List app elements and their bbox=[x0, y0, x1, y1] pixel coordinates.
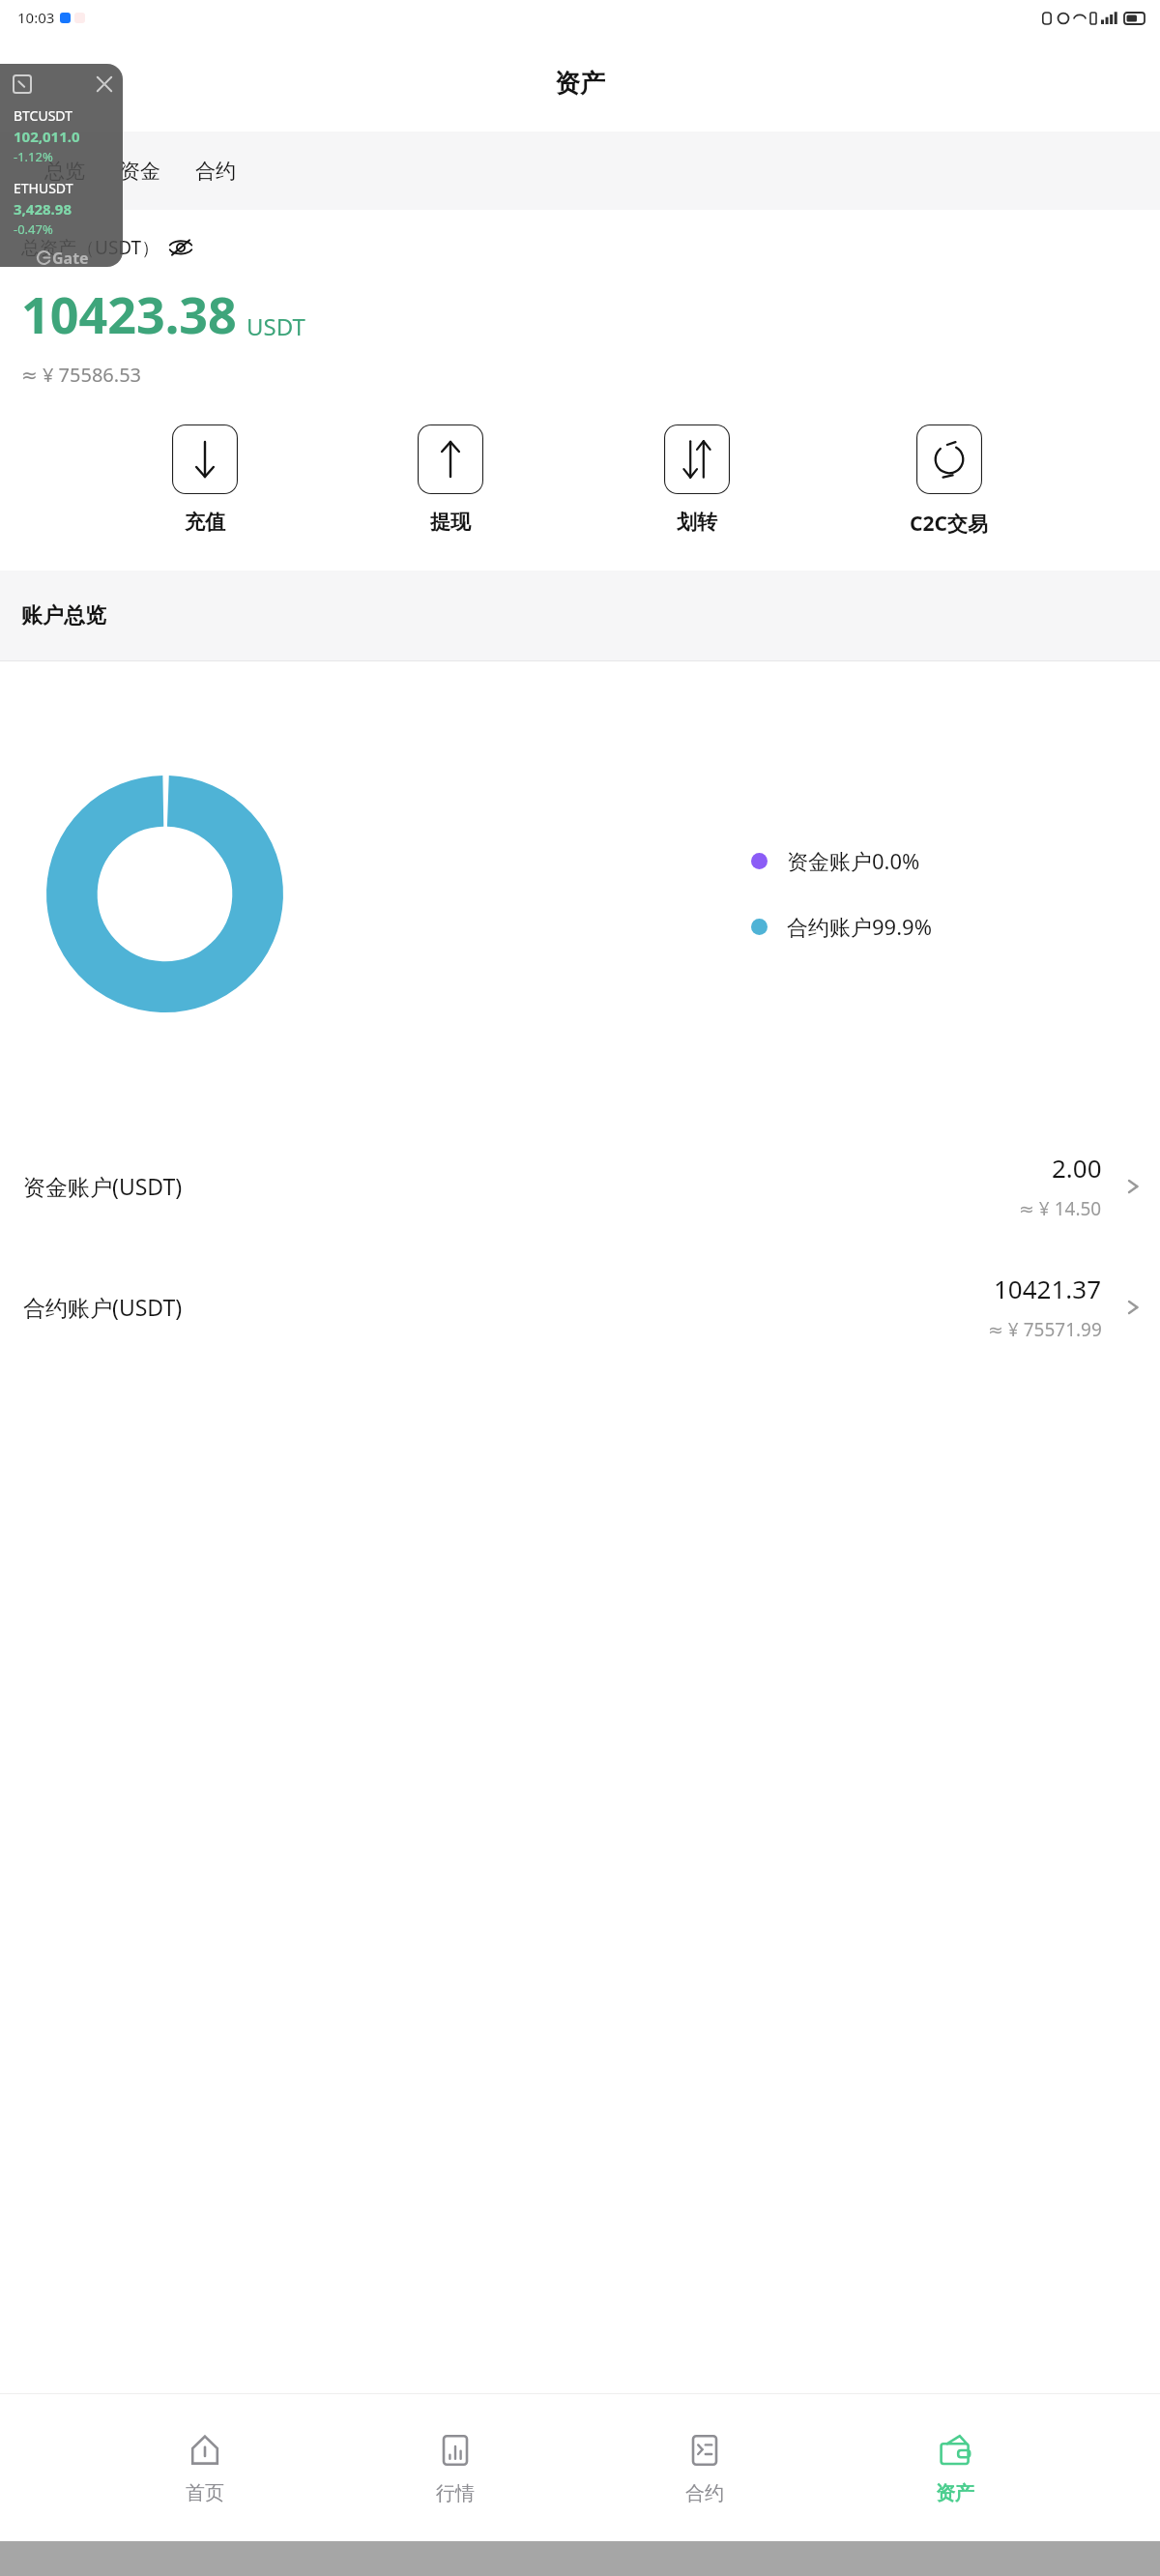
button[interactable]: C2C交易 bbox=[902, 421, 996, 542]
staticText: ≈ ¥ 75586.53 bbox=[21, 362, 142, 388]
staticText: 10423.38 bbox=[21, 279, 237, 348]
staticText: 资产 bbox=[936, 2481, 974, 2505]
button[interactable]: 资金账户(USDT) bbox=[0, 1126, 1160, 1246]
button[interactable]: Hide balance bbox=[166, 233, 195, 262]
staticText: 2.00 bbox=[1052, 1151, 1102, 1185]
staticText: 划转 bbox=[677, 510, 717, 535]
staticText: 行情 bbox=[436, 2481, 475, 2505]
staticText: ETHUSDT bbox=[14, 179, 73, 197]
button[interactable]: 行情 bbox=[411, 2425, 500, 2511]
button[interactable]: 资金 bbox=[102, 151, 178, 191]
staticText: 3,428.98 bbox=[14, 199, 72, 219]
other: Expand bbox=[14, 75, 31, 93]
other: Collapse bbox=[96, 75, 113, 93]
staticText: ≈ ¥ 75571.99 bbox=[988, 1317, 1102, 1342]
staticText: 合约 bbox=[195, 159, 236, 184]
staticText: Gate bbox=[52, 248, 89, 267]
staticText: 账户总览 bbox=[21, 602, 106, 629]
staticText: BTCUSDT bbox=[14, 106, 72, 125]
button[interactable]: 合约 bbox=[660, 2425, 749, 2511]
staticText: USDT bbox=[246, 310, 305, 342]
staticText: 资产 bbox=[555, 68, 605, 100]
staticText: 资金 bbox=[120, 159, 160, 184]
staticText: 合约 bbox=[685, 2481, 724, 2505]
button[interactable]: 总览 bbox=[27, 151, 102, 191]
button[interactable]: 提现 bbox=[410, 421, 491, 539]
staticText: C2C交易 bbox=[910, 510, 988, 538]
button[interactable]: 划转 bbox=[656, 421, 738, 539]
staticText: 10:03 bbox=[17, 8, 55, 27]
staticText: 10421.37 bbox=[994, 1272, 1102, 1305]
staticText: -0.47% bbox=[14, 220, 53, 238]
staticText: -1.12% bbox=[14, 148, 53, 165]
staticText: 资金账户(USDT) bbox=[23, 1171, 183, 1201]
button[interactable]: 合约账户(USDT) bbox=[0, 1246, 1160, 1367]
button[interactable]: 合约 bbox=[178, 151, 253, 191]
staticText: 充值 bbox=[185, 510, 225, 535]
staticText: 总览 bbox=[44, 159, 85, 184]
staticText: ≈ ¥ 14.50 bbox=[1019, 1196, 1102, 1221]
button[interactable]: Expand bbox=[0, 64, 123, 267]
staticText: 资金账户0.0% bbox=[787, 846, 920, 875]
staticText: 合约账户99.9% bbox=[787, 912, 932, 941]
button[interactable]: 资产 bbox=[911, 2425, 1000, 2511]
staticText: 102,011.0 bbox=[14, 127, 80, 146]
button[interactable]: 充值 bbox=[164, 421, 246, 539]
staticText: 提现 bbox=[430, 510, 471, 535]
staticText: 总资产（USDT） bbox=[21, 235, 160, 260]
button[interactable]: 首页 bbox=[160, 2425, 249, 2511]
staticText: 合约账户(USDT) bbox=[23, 1292, 183, 1322]
staticText: 首页 bbox=[186, 2481, 224, 2505]
